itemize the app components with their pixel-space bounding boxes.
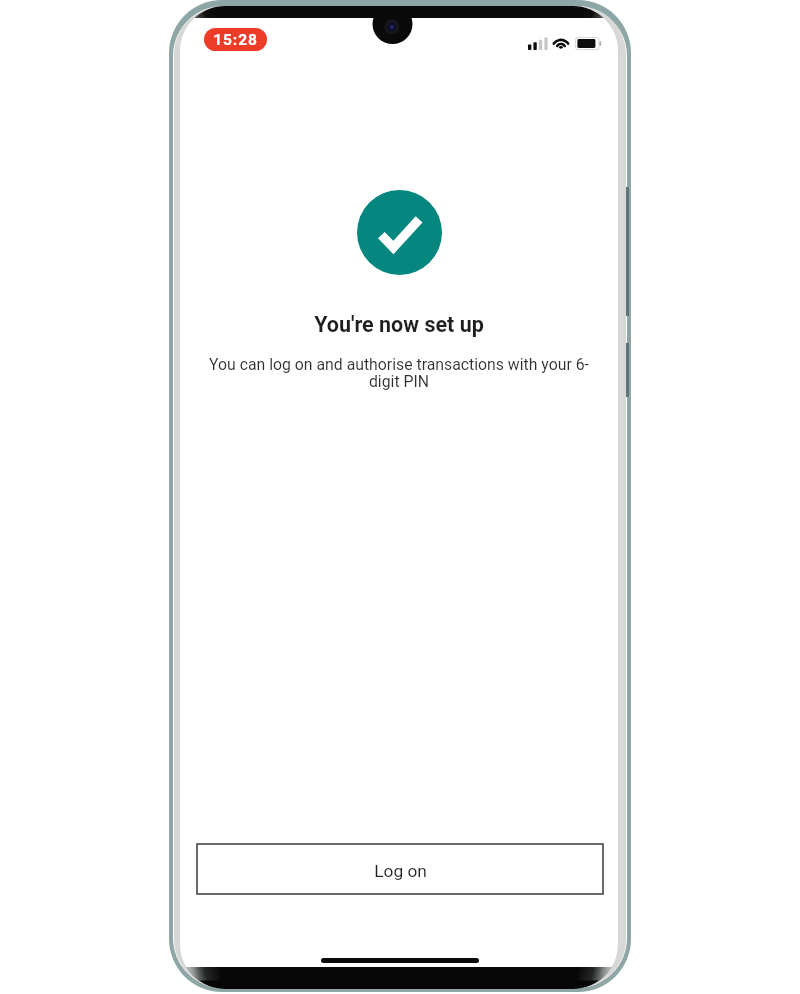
staticText: Log on (374, 861, 427, 881)
button[interactable]: Home (321, 958, 479, 963)
other: Setup complete (357, 190, 442, 275)
staticText: You can log on and authorise transaction… (208, 355, 590, 391)
other: Mobile signal, Wi-Fi and battery status (528, 36, 603, 52)
staticText: You're now set up (314, 312, 484, 337)
button[interactable]: Log on (197, 844, 603, 894)
staticText: 15:28 (213, 31, 258, 49)
